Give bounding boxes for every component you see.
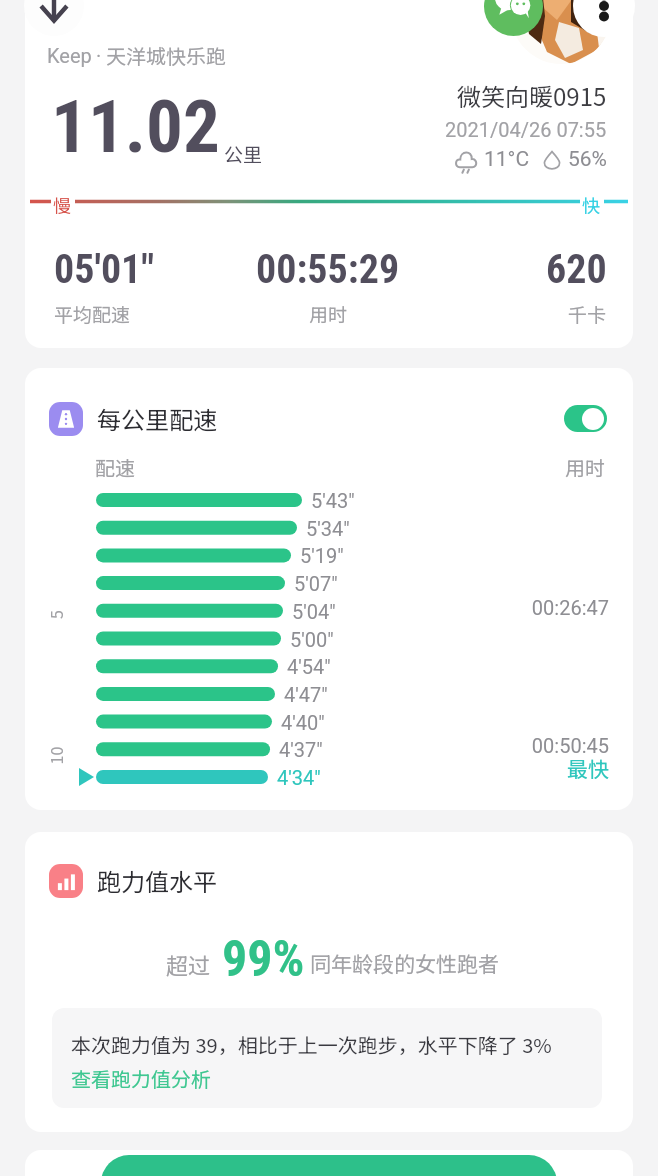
staticText: 2021/04/26 07:55 <box>445 118 607 141</box>
staticText: 5'04" <box>292 600 336 623</box>
staticText: 5'00" <box>290 628 334 651</box>
staticText: 千卡 <box>568 300 607 328</box>
button[interactable]: 查看跑力值分析 <box>71 1064 211 1093</box>
button[interactable]: Share <box>101 1155 557 1176</box>
staticText: 4'37" <box>279 738 323 761</box>
button[interactable]: Download <box>24 0 84 36</box>
staticText: 快 <box>582 192 600 218</box>
staticText: 5'07" <box>294 572 338 595</box>
staticText: 同年龄段的女性跑者 <box>310 948 499 978</box>
staticText: 5 <box>44 610 67 619</box>
staticText: 用时 <box>309 300 348 328</box>
staticText: 56% <box>568 147 607 172</box>
staticText: 4'54" <box>287 655 331 678</box>
staticText: 10 <box>43 746 66 764</box>
staticText: 4'47" <box>284 683 328 706</box>
staticText: · <box>96 44 102 67</box>
staticText: 配速 <box>95 453 135 482</box>
staticText: 最快 <box>445 753 609 783</box>
button[interactable]: Share to WeChat <box>484 0 543 36</box>
staticText: 00:26:47 <box>445 596 609 619</box>
staticText: 平均配速 <box>54 300 131 328</box>
staticText: 跑力值水平 <box>97 863 217 898</box>
staticText: 00:50:45 <box>445 734 609 757</box>
staticText: 公里 <box>224 140 263 168</box>
staticText: 查看跑力值分析 <box>71 1064 211 1093</box>
staticText: 5'43" <box>311 489 355 512</box>
staticText: 每公里配速 <box>97 401 217 436</box>
staticText: 5'34" <box>306 517 350 540</box>
staticText: 5'19" <box>300 544 344 567</box>
button[interactable]: More options <box>573 0 635 37</box>
staticText: 11.02 <box>51 84 220 170</box>
staticText: 99% <box>222 930 305 989</box>
staticText: 620 <box>546 246 607 293</box>
staticText: 4'34" <box>277 766 321 789</box>
button[interactable]: Profile photo <box>511 0 611 64</box>
staticText: 用时 <box>565 453 605 482</box>
staticText: 4'40" <box>281 711 325 734</box>
button[interactable]: Toggle pace per kilometer <box>564 405 607 432</box>
staticText: 本次跑力值为 39，相比于上一次跑步，水平下降了 3% <box>71 1030 552 1059</box>
staticText: 05'01" <box>54 246 155 293</box>
staticText: 慢 <box>53 192 71 218</box>
staticText: 00:55:29 <box>256 246 400 293</box>
staticText: 天洋城快乐跑 <box>106 41 226 70</box>
staticText: Keep <box>47 44 92 67</box>
staticText: 微笑向暖0915 <box>457 78 607 113</box>
staticText: 超过 <box>166 948 211 980</box>
staticText: 11°C <box>484 147 530 172</box>
